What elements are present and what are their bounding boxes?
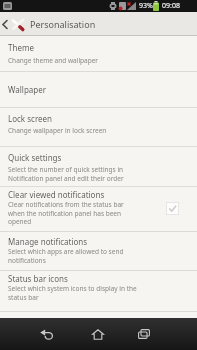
button[interactable]: Manage notifications [0, 232, 197, 271]
staticText: Lock screen [8, 113, 53, 124]
staticText: Theme [8, 42, 34, 53]
button[interactable]: Quick settings [0, 147, 197, 187]
button[interactable]: Personalisation [0, 12, 96, 36]
staticText: Quick settings [8, 152, 62, 163]
staticText: Manage notifications [8, 236, 88, 247]
button[interactable]: Theme [0, 36, 197, 72]
staticText: 09:08 [162, 1, 180, 11]
staticText: Clear notifications from the status bar … [8, 200, 124, 226]
button[interactable]: Status bar icons [0, 271, 197, 312]
staticText: Select which apps are allowed to send no… [8, 247, 124, 265]
staticText: Select the number of quick settings in N… [8, 165, 124, 183]
staticText: Change wallpaper in lock screen [8, 126, 107, 135]
button[interactable] [122, 318, 166, 350]
staticText: Change theme and wallpaper [8, 56, 99, 65]
staticText: Personalisation [30, 18, 96, 30]
staticText: Status bar icons [8, 273, 68, 284]
staticText: Clear viewed notifications [8, 189, 105, 200]
staticText: 93% [139, 1, 153, 11]
button[interactable] [76, 318, 120, 350]
button[interactable]: Clear viewed notifications [0, 187, 197, 232]
staticText: Select which system icons to display in … [8, 284, 137, 302]
button[interactable]: Lock screen [0, 108, 197, 147]
button[interactable] [24, 318, 68, 350]
button[interactable]: Wallpaper [0, 72, 197, 108]
staticText: Wallpaper [8, 84, 47, 95]
